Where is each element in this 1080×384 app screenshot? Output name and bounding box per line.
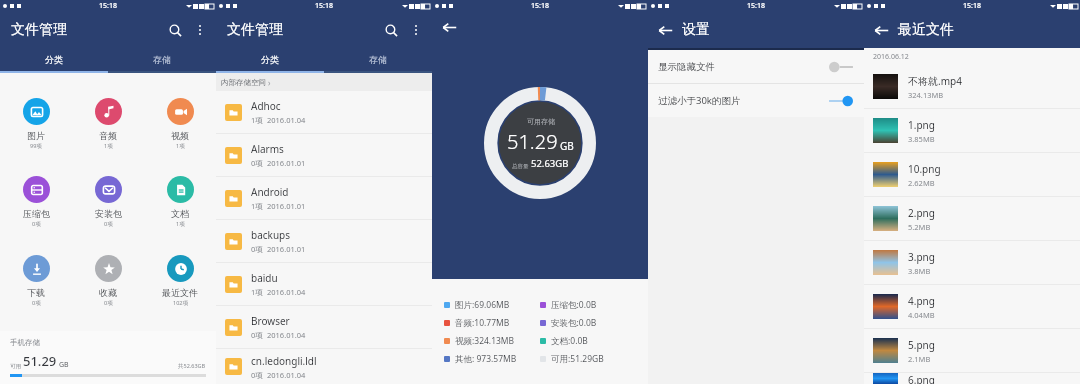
button[interactable]: 图片 bbox=[0, 96, 72, 152]
button[interactable]: Alarms bbox=[216, 134, 432, 177]
staticText: 存储 bbox=[369, 54, 387, 65]
button[interactable]: Search bbox=[162, 17, 188, 43]
button[interactable]: 存储 bbox=[108, 48, 216, 71]
button[interactable]: Back bbox=[432, 11, 466, 43]
button[interactable]: 5.png bbox=[864, 329, 1080, 373]
staticText: 音频:10.77MB bbox=[455, 317, 510, 329]
staticText: 视频:324.13MB bbox=[455, 335, 515, 347]
staticText: 15:18 bbox=[99, 1, 117, 11]
button[interactable]: 3.png bbox=[864, 241, 1080, 285]
button[interactable]: Search bbox=[378, 17, 404, 43]
staticText: 安装包 bbox=[95, 208, 122, 219]
staticText: backups bbox=[251, 228, 291, 242]
staticText: 下载 bbox=[27, 287, 45, 298]
staticText: 2016.01.01 bbox=[267, 244, 306, 254]
staticText: › bbox=[268, 77, 271, 88]
staticText: 文档:0.0B bbox=[551, 335, 588, 347]
staticText: 15:18 bbox=[315, 1, 333, 11]
staticText: 压缩包:0.0B bbox=[551, 299, 597, 311]
button[interactable]: 6.png bbox=[864, 373, 1080, 384]
staticText: 4.04MB bbox=[908, 310, 935, 320]
button[interactable]: 10.png bbox=[864, 153, 1080, 197]
staticText: 音频 bbox=[99, 130, 117, 141]
button[interactable]: More options bbox=[404, 18, 428, 42]
button[interactable]: Back bbox=[864, 13, 898, 47]
staticText: 最近文件 bbox=[162, 287, 198, 298]
staticText: 0项 bbox=[251, 158, 263, 168]
staticText: 15:18 bbox=[531, 1, 549, 11]
staticText: 0项 bbox=[104, 220, 113, 228]
staticText: 1项 bbox=[251, 287, 263, 297]
staticText: 存储 bbox=[153, 54, 171, 65]
staticText: 51.29 bbox=[23, 352, 57, 370]
button[interactable]: Back bbox=[648, 13, 682, 47]
staticText: 1项 bbox=[176, 142, 185, 150]
staticText: 1.png bbox=[908, 118, 935, 132]
staticText: 1项 bbox=[176, 220, 185, 228]
staticText: 0项 bbox=[251, 330, 263, 340]
button[interactable]: 收藏 bbox=[72, 253, 144, 309]
button[interactable]: backups bbox=[216, 220, 432, 263]
button[interactable]: 分类 bbox=[0, 48, 108, 71]
button[interactable]: 安装包 bbox=[72, 174, 144, 230]
staticText: Android bbox=[251, 185, 289, 199]
button[interactable]: 视频 bbox=[144, 96, 216, 152]
button[interactable]: More options bbox=[188, 18, 212, 42]
button[interactable]: Browser bbox=[216, 306, 432, 349]
staticText: 1项 bbox=[104, 142, 113, 150]
button[interactable]: 压缩包 bbox=[0, 174, 72, 230]
staticText: 1项 bbox=[251, 201, 263, 211]
staticText: 4.png bbox=[908, 294, 935, 308]
staticText: 安装包:0.0B bbox=[551, 317, 597, 329]
staticText: 手机存储 bbox=[10, 338, 40, 347]
button[interactable]: cn.ledongli.ldl bbox=[216, 349, 432, 384]
staticText: GB bbox=[560, 139, 574, 153]
staticText: 共52.63GB bbox=[178, 362, 206, 370]
staticText: cn.ledongli.ldl bbox=[251, 354, 317, 368]
staticText: 可用 bbox=[10, 363, 21, 370]
button[interactable]: 存储 bbox=[324, 48, 432, 71]
staticText: 10.png bbox=[908, 162, 941, 176]
staticText: 文件管理 bbox=[227, 21, 283, 39]
staticText: baidu bbox=[251, 271, 278, 285]
staticText: 102项 bbox=[173, 299, 188, 307]
staticText: Adhoc bbox=[251, 99, 281, 113]
staticText: 2016.01.04 bbox=[267, 330, 306, 340]
staticText: 3.85MB bbox=[908, 134, 935, 144]
staticText: 其他: 973.57MB bbox=[455, 353, 517, 365]
staticText: 2016.01.04 bbox=[267, 115, 306, 125]
button[interactable]: 2.png bbox=[864, 197, 1080, 241]
button[interactable]: 音频 bbox=[72, 96, 144, 152]
button[interactable]: 显示隐藏文件 bbox=[648, 50, 864, 83]
staticText: 2016.06.12 bbox=[873, 52, 909, 62]
staticText: 过滤小于30k的图片 bbox=[658, 94, 741, 107]
button[interactable]: baidu bbox=[216, 263, 432, 306]
staticText: 2.1MB bbox=[908, 354, 931, 364]
staticText: 内部存储空间 bbox=[221, 78, 266, 87]
button[interactable]: 分类 bbox=[216, 48, 324, 71]
staticText: 324.13MB bbox=[908, 90, 944, 100]
staticText: GB bbox=[59, 360, 69, 370]
staticText: 0项 bbox=[251, 244, 263, 254]
button[interactable]: Android bbox=[216, 177, 432, 220]
staticText: 0项 bbox=[104, 299, 113, 307]
staticText: Alarms bbox=[251, 142, 284, 156]
button[interactable]: 最近文件 bbox=[144, 253, 216, 309]
staticText: 分类 bbox=[261, 54, 279, 65]
staticText: 3.8MB bbox=[908, 266, 931, 276]
button[interactable]: Adhoc bbox=[216, 91, 432, 134]
button[interactable]: 过滤小于30k的图片 bbox=[648, 84, 864, 117]
button[interactable]: 4.png bbox=[864, 285, 1080, 329]
staticText: 图片:69.06MB bbox=[455, 299, 510, 311]
button[interactable]: 不将就.mp4 bbox=[864, 65, 1080, 109]
staticText: 15:18 bbox=[963, 1, 981, 11]
staticText: 收藏 bbox=[99, 287, 117, 298]
button[interactable]: 文档 bbox=[144, 174, 216, 230]
staticText: 5.2MB bbox=[908, 222, 931, 232]
staticText: 文档 bbox=[171, 208, 189, 219]
staticText: 0项 bbox=[251, 370, 263, 380]
button[interactable]: 内部存储空间 bbox=[221, 73, 432, 91]
staticText: 文件管理 bbox=[11, 21, 67, 39]
button[interactable]: 1.png bbox=[864, 109, 1080, 153]
button[interactable]: 下载 bbox=[0, 253, 72, 309]
